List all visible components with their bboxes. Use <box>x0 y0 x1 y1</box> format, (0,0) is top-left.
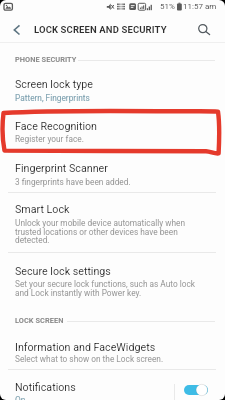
staticText: Set your secure lock functions, such as … <box>15 279 196 289</box>
staticText: PHONE SECURITY <box>15 55 77 64</box>
staticText: LOCK SCREEN <box>15 316 64 325</box>
staticText: Unlock your mobile device automatically … <box>15 218 186 228</box>
staticText: Secure lock settings <box>15 265 111 278</box>
staticText: and Lock instantly with Power key. <box>15 288 142 298</box>
button[interactable]: Notifications <box>0 370 173 400</box>
staticText: Screen lock type <box>15 78 93 91</box>
staticText: detected. <box>15 235 50 245</box>
staticText: Notifications <box>15 381 76 394</box>
staticText: Select what to show on the Lock screen. <box>15 354 164 364</box>
staticText: Register your face. <box>15 134 84 144</box>
staticText: Fingerprint Scanner <box>15 162 108 175</box>
button[interactable]: Face Recognition <box>0 114 225 151</box>
staticText: 3 fingerprints have been added. <box>15 177 131 187</box>
button[interactable]: Navigate up <box>3 14 31 41</box>
staticText: Smart Lock <box>15 203 70 216</box>
button[interactable]: Fingerprint Scanner <box>0 153 225 191</box>
button[interactable]: Search <box>190 14 217 41</box>
staticText: 51% <box>160 2 175 11</box>
staticText: Pattern, Fingerprints <box>15 93 90 103</box>
staticText: Information and FaceWidgets <box>15 341 156 354</box>
staticText: 11:57 am <box>183 2 217 11</box>
staticText: Face Recognition <box>15 120 97 133</box>
staticText: On <box>15 395 26 400</box>
button[interactable]: Screen lock type <box>0 72 225 114</box>
button[interactable]: Smart Lock <box>0 193 225 251</box>
button[interactable]: Secure lock settings <box>0 253 225 302</box>
staticText: trusted locations or other devices have … <box>15 227 178 237</box>
button[interactable]: Notifications on <box>180 379 212 395</box>
button[interactable]: Information and FaceWidgets <box>0 333 225 369</box>
staticText: LOCK SCREEN AND SECURITY <box>34 24 167 35</box>
